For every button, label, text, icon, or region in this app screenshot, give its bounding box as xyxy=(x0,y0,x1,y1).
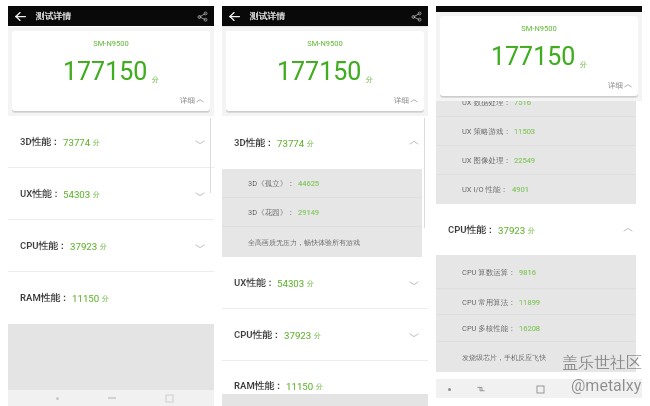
staticText: 73774 xyxy=(63,137,91,148)
button[interactable]: UX性能： xyxy=(8,168,214,220)
button[interactable]: Menu xyxy=(442,382,456,396)
staticText: 7516 xyxy=(514,98,531,107)
staticText: CPU 多核性能： xyxy=(462,324,516,333)
staticText: CPU性能： xyxy=(448,224,496,236)
staticText: 分 xyxy=(307,279,314,288)
staticText: 分 xyxy=(93,190,100,199)
staticText: 测试详情 xyxy=(250,11,286,22)
staticText: 11503 xyxy=(514,127,536,136)
staticText: 分 xyxy=(314,331,321,340)
button[interactable]: CPU性能： xyxy=(436,204,642,255)
button[interactable]: CPU 常用算法： xyxy=(436,289,636,315)
staticText: 分 xyxy=(152,75,159,84)
staticText: CPU性能： xyxy=(20,240,68,252)
staticText: 3D《花园》： xyxy=(248,208,295,217)
staticText: 177150 xyxy=(491,42,576,71)
button[interactable]: UX 图像处理： xyxy=(436,146,636,175)
staticText: 分 xyxy=(366,75,373,84)
staticText: 盖乐世社区 xyxy=(562,353,642,373)
staticText: 54303 xyxy=(277,278,305,289)
staticText: 37923 xyxy=(498,225,526,236)
staticText: 分 xyxy=(93,138,100,147)
staticText: CPU 算数运算： xyxy=(462,268,516,277)
staticText: 4901 xyxy=(512,185,529,194)
button[interactable]: UX性能： xyxy=(222,257,428,309)
button[interactable]: UX I/O 性能： xyxy=(436,175,636,204)
button[interactable]: UX 数据处理： xyxy=(436,88,636,117)
button[interactable]: Home xyxy=(162,391,176,405)
button[interactable]: RAM性能： xyxy=(234,380,323,392)
button[interactable]: 3D《孤立》： xyxy=(222,169,422,198)
staticText: 详细 xyxy=(608,81,623,90)
staticText: CPU性能： xyxy=(234,329,282,341)
staticText: 分 xyxy=(307,139,314,148)
button[interactable]: Recent apps xyxy=(474,382,488,396)
staticText: 全高画质无压力，畅快体验所有游戏 xyxy=(248,238,360,247)
button[interactable]: Back xyxy=(12,8,28,24)
staticText: RAM性能： xyxy=(234,380,284,392)
button[interactable]: 详细 xyxy=(394,96,418,105)
staticText: 发烧级芯片，手机反应飞快 xyxy=(462,353,546,362)
button[interactable]: CPU性能： xyxy=(8,220,214,272)
button[interactable]: 详细 xyxy=(608,81,632,90)
staticText: 22549 xyxy=(514,156,536,165)
staticText: 分 xyxy=(316,382,323,391)
staticText: UX I/O 性能： xyxy=(462,185,509,194)
staticText: @metalxy xyxy=(571,376,642,395)
button[interactable]: RAM性能： xyxy=(8,272,214,324)
staticText: 详细 xyxy=(394,96,409,105)
staticText: 29149 xyxy=(298,208,320,217)
button[interactable]: Recent apps xyxy=(105,391,119,405)
staticText: 分 xyxy=(102,294,109,303)
staticText: 3D性能： xyxy=(234,137,275,149)
staticText: 11150 xyxy=(72,293,100,304)
button[interactable]: 3D性能： xyxy=(8,116,214,168)
staticText: SM-N9500 xyxy=(93,39,129,48)
staticText: 37923 xyxy=(284,330,312,341)
staticText: 44625 xyxy=(298,179,320,188)
staticText: UX性能： xyxy=(234,277,275,289)
button[interactable]: CPU 多核性能： xyxy=(436,315,636,342)
staticText: UX 图像处理： xyxy=(462,156,511,165)
staticText: RAM性能： xyxy=(20,292,70,304)
button[interactable]: Menu xyxy=(50,391,64,405)
button[interactable]: Home xyxy=(533,382,547,396)
staticText: 37923 xyxy=(70,241,98,252)
staticText: 11899 xyxy=(519,298,541,307)
button[interactable]: Back xyxy=(226,8,242,24)
staticText: CPU 常用算法： xyxy=(462,298,516,307)
staticText: 54303 xyxy=(63,189,91,200)
staticText: 177150 xyxy=(277,57,362,86)
button[interactable]: UX 策略游戏： xyxy=(436,117,636,146)
staticText: 3D性能： xyxy=(20,136,61,148)
button[interactable]: CPU性能： xyxy=(222,309,428,361)
staticText: 9816 xyxy=(519,268,536,277)
staticText: 177150 xyxy=(63,57,148,86)
staticText: SM-N9500 xyxy=(521,24,557,33)
staticText: SM-N9500 xyxy=(307,39,343,48)
staticText: 73774 xyxy=(277,138,305,149)
button[interactable]: 3D性能： xyxy=(222,116,428,169)
button[interactable]: 详细 xyxy=(180,96,204,105)
button[interactable]: 3D《花园》： xyxy=(222,198,422,227)
staticText: UX性能： xyxy=(20,188,61,200)
staticText: 16208 xyxy=(519,324,541,333)
staticText: 3D《孤立》： xyxy=(248,179,295,188)
staticText: 11150 xyxy=(286,381,314,392)
staticText: 分 xyxy=(580,60,587,69)
staticText: UX 策略游戏： xyxy=(462,127,511,136)
staticText: UX 数据处理： xyxy=(462,98,511,107)
staticText: 测试详情 xyxy=(36,11,72,22)
button[interactable]: Share xyxy=(408,8,424,24)
button[interactable]: Share xyxy=(194,8,210,24)
staticText: 分 xyxy=(100,242,107,251)
staticText: 分 xyxy=(528,226,535,235)
button[interactable]: CPU 算数运算： xyxy=(436,255,636,289)
staticText: 详细 xyxy=(180,96,195,105)
